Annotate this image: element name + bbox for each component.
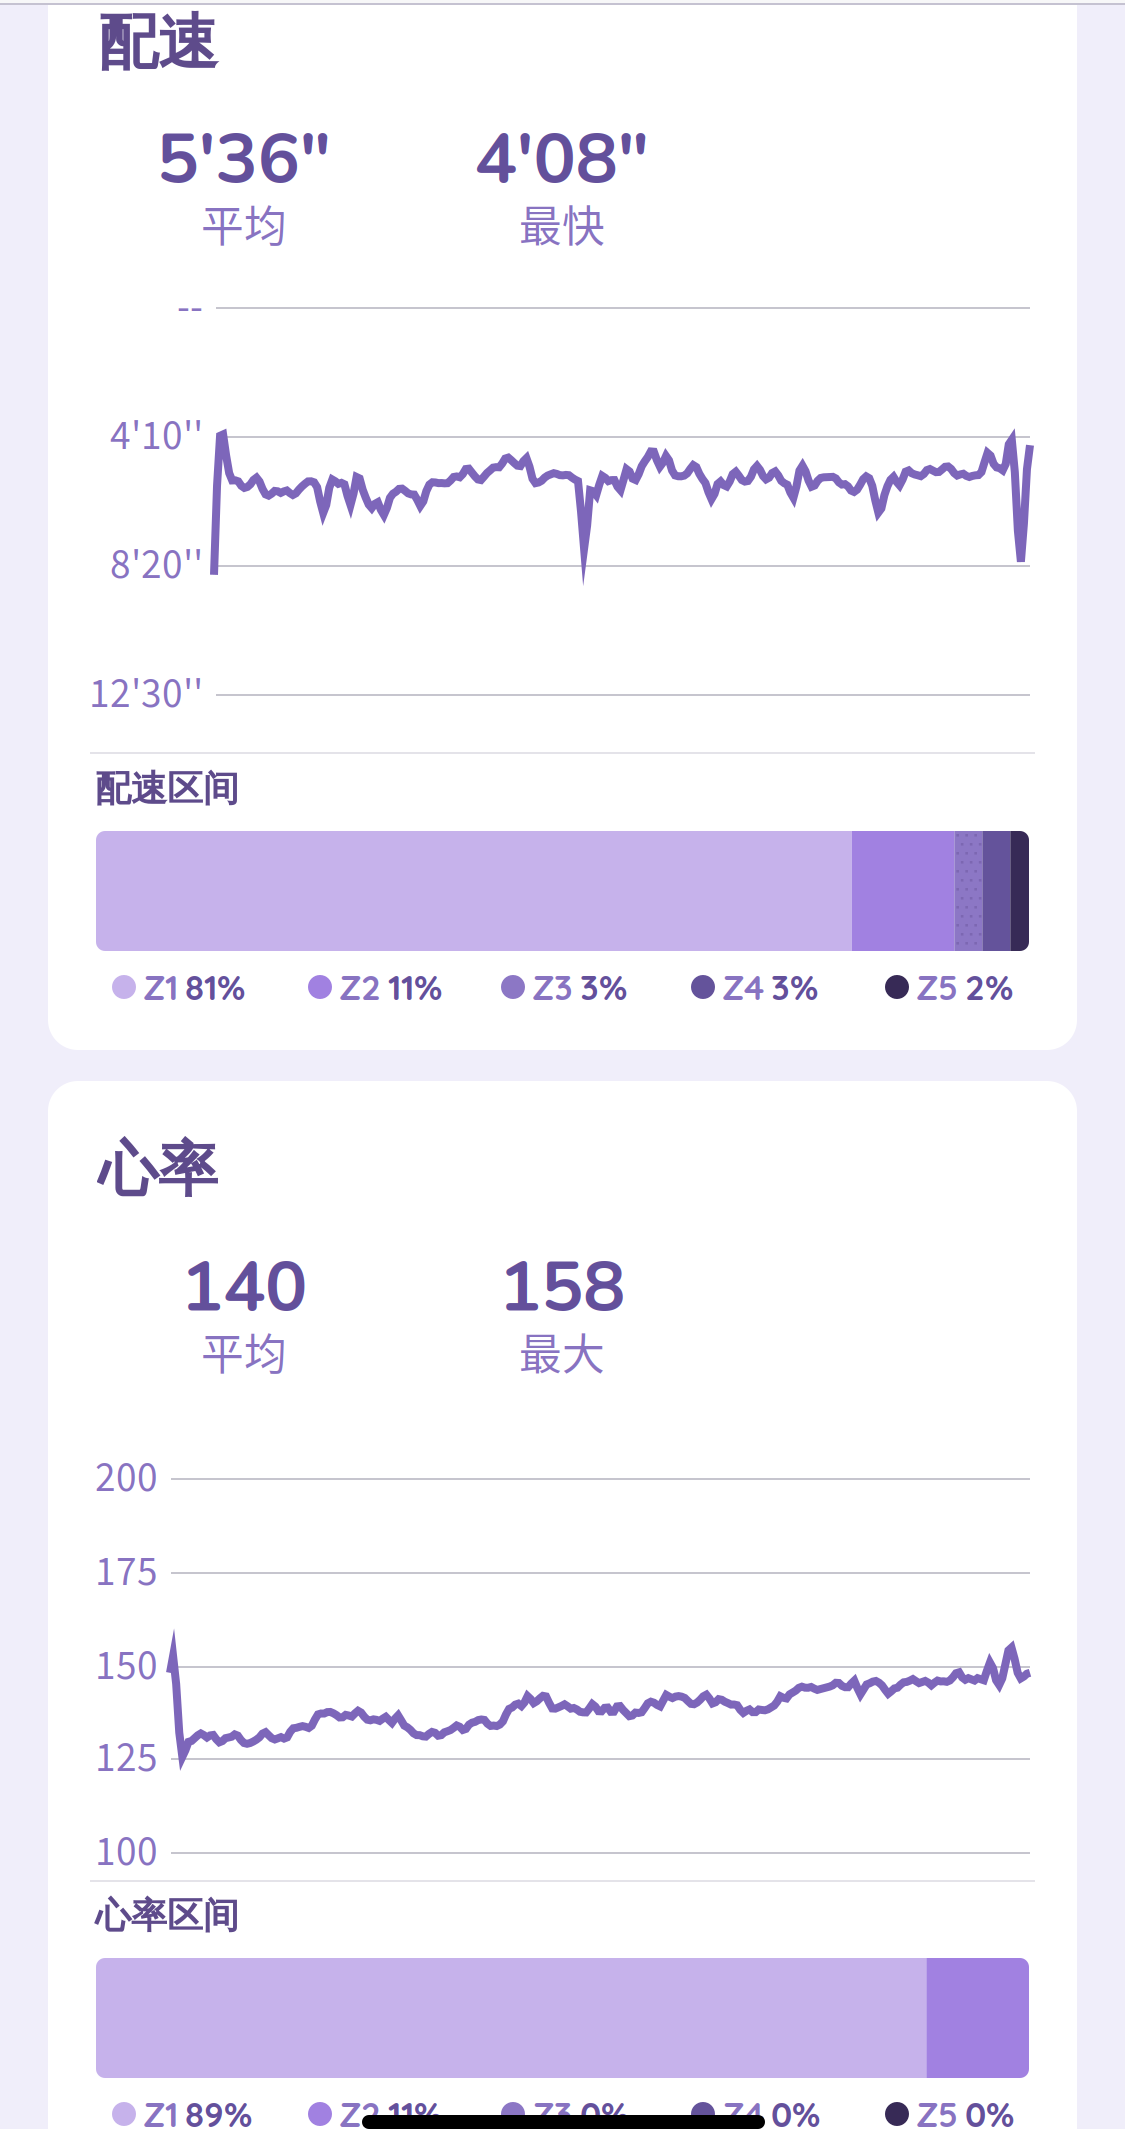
staticText: 心率区间 [95,1893,239,1938]
staticText: Z4 [722,2092,764,2129]
staticText: Z3 [532,965,573,1009]
staticText: 200 [95,1449,158,1507]
staticText: 最大 [519,1320,605,1382]
staticText: 175 [95,1543,158,1601]
staticText: 心率 [98,1132,218,1208]
staticText: -- [177,278,203,336]
staticText: 12'30'' [89,665,203,723]
staticText: Z1 [143,2092,178,2129]
staticText: 89% [185,2092,252,2129]
staticText: Z2 [339,2092,381,2129]
staticText: 11% [388,965,442,1009]
staticText: 平均 [201,1320,287,1382]
staticText: Z4 [722,965,764,1009]
staticText: 5'36" [156,111,331,207]
staticText: Z1 [143,965,178,1009]
staticText: Z5 [916,2092,958,2129]
staticText: 81% [185,965,245,1009]
staticText: 158 [499,1239,625,1335]
staticText: 平均 [201,192,287,254]
staticText: 125 [95,1729,158,1787]
staticText: Z5 [916,965,958,1009]
staticText: 0% [580,2092,629,2129]
staticText: 150 [95,1637,158,1695]
staticText: Z3 [532,2092,573,2129]
staticText: 4'10'' [110,407,203,465]
staticText: 3% [771,965,818,1009]
staticText: Z2 [339,965,381,1009]
staticText: 100 [95,1823,158,1881]
staticText: 最快 [519,192,605,254]
staticText: 配速区间 [95,766,239,811]
staticText: 配速 [98,5,218,81]
staticText: 0% [771,2092,820,2129]
staticText: 2% [965,965,1013,1009]
staticText: 11% [388,2092,442,2129]
staticText: 4'08" [474,111,649,207]
staticText: 3% [580,965,627,1009]
staticText: 140 [181,1239,307,1335]
staticText: 0% [965,2092,1014,2129]
staticText: 8'20'' [110,536,203,594]
